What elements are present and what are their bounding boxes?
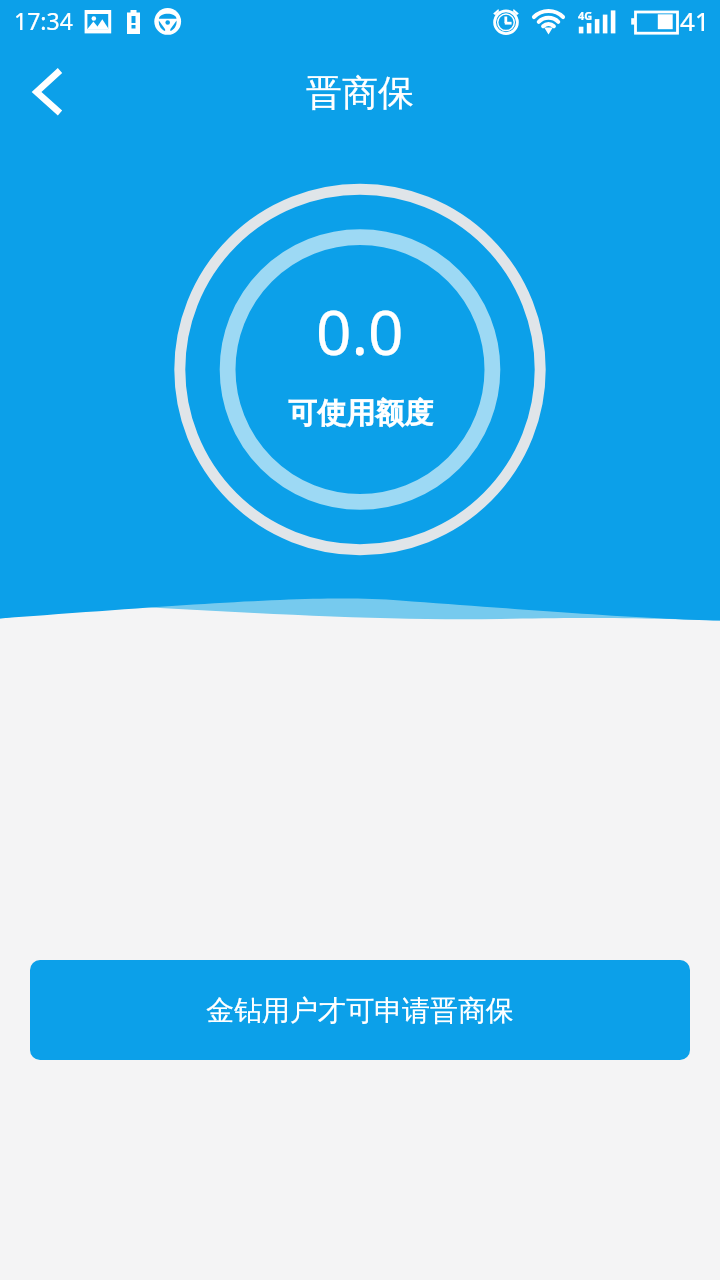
staticText: 4G — [578, 8, 593, 23]
staticText: 晋商保 — [306, 70, 414, 115]
staticText: 可使用额度 — [288, 395, 433, 432]
staticText: 金钻用户才可申请晋商保 — [206, 993, 514, 1028]
staticText: 0.0 — [316, 289, 404, 359]
button[interactable]: 金钻用户才可申请晋商保 — [30, 960, 690, 1060]
button[interactable]: Back — [8, 64, 88, 120]
staticText: 41 — [680, 3, 710, 38]
staticText: 17:34 — [14, 5, 73, 36]
